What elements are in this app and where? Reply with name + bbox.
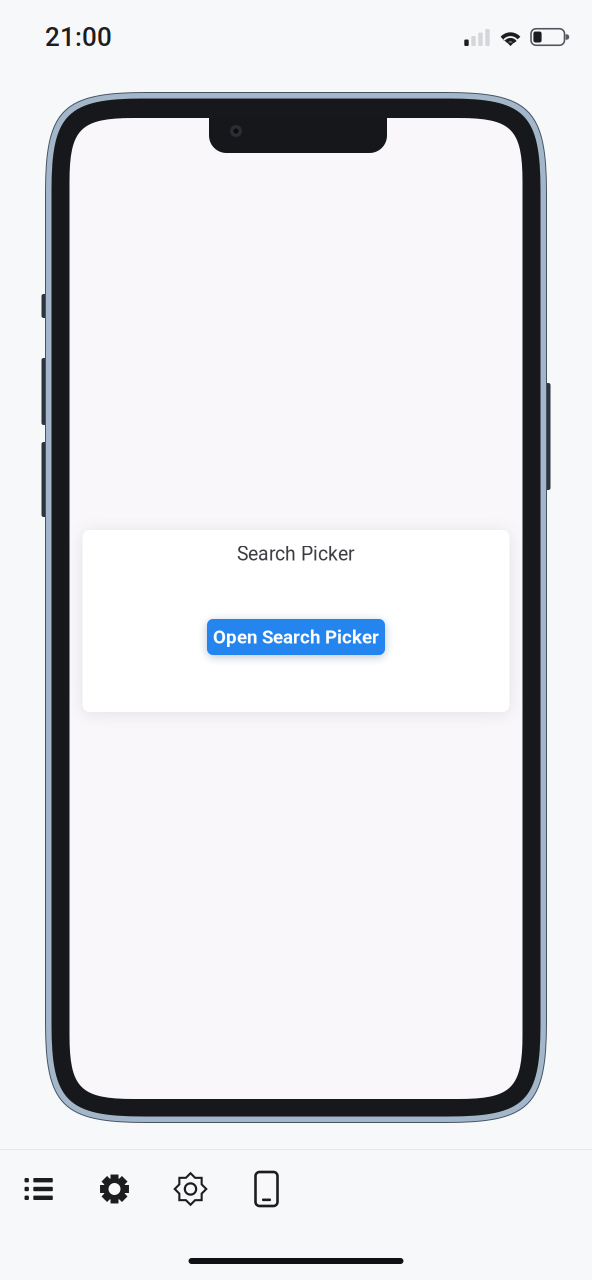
button[interactable]: Settings: [76, 1160, 152, 1218]
button[interactable]: Device: [228, 1160, 304, 1218]
staticText: 21:00: [45, 22, 112, 52]
button[interactable]: Appearance: [152, 1160, 228, 1218]
staticText: Search Picker: [237, 543, 355, 565]
button[interactable]: Device list: [0, 1160, 76, 1218]
button[interactable]: Open Search Picker: [207, 619, 385, 655]
staticText: Open Search Picker: [213, 626, 379, 648]
